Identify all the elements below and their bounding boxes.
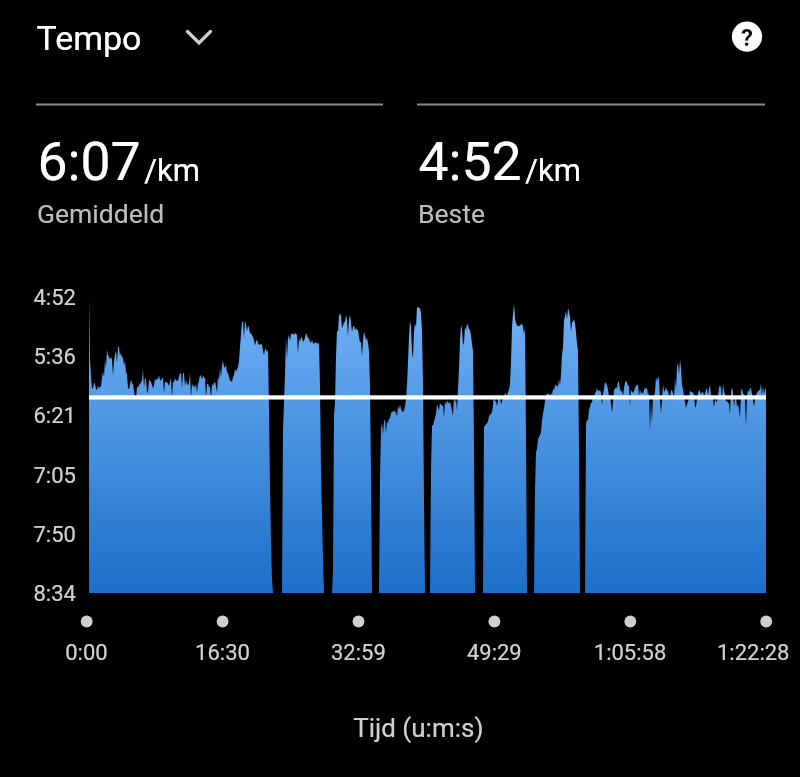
button[interactable]: Help [726,16,768,58]
